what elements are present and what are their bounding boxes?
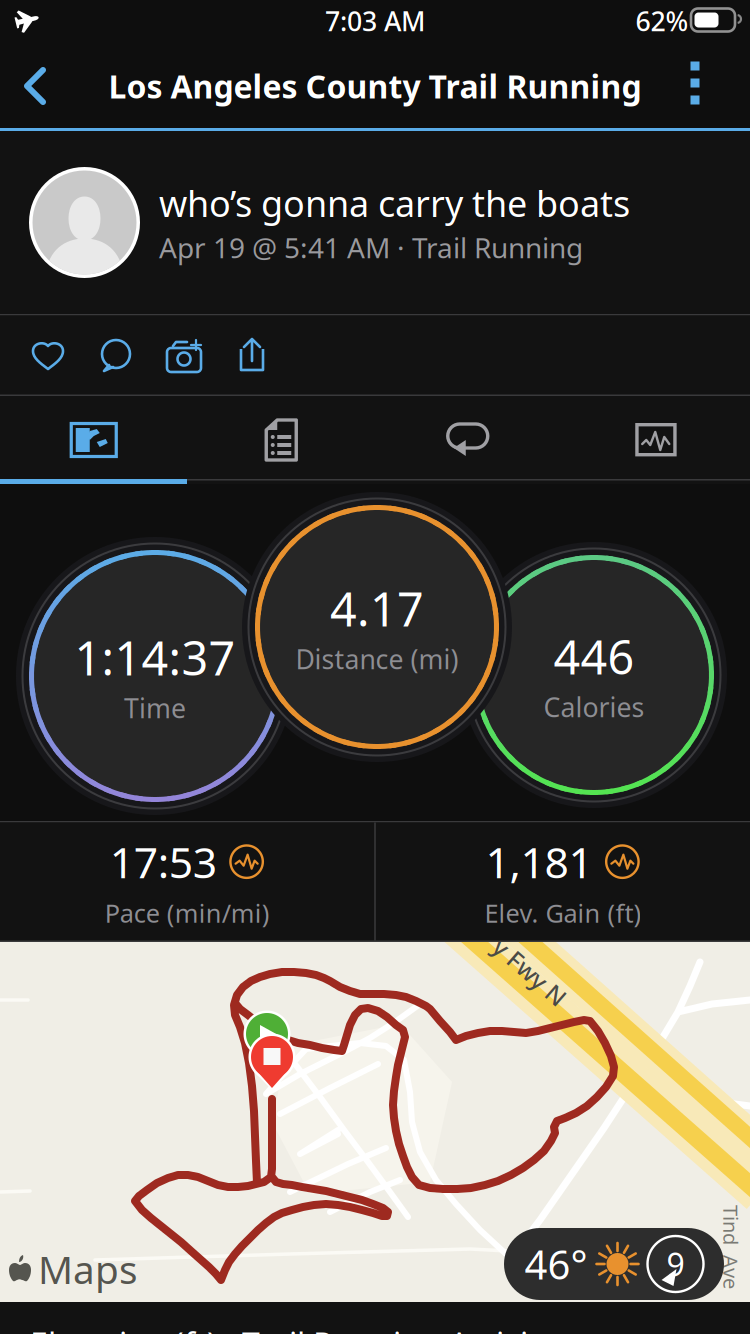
button[interactable]: Map [0,396,187,484]
button[interactable]: Details [187,396,375,484]
staticText: Los Angeles County Trail Running [108,65,641,107]
staticText: y Fwy N [485,956,574,988]
staticText: Tind Ave [689,1234,750,1260]
staticText: Pace (min/mi) [105,896,270,930]
button[interactable]: Add photo [150,330,218,380]
staticText: Apr 19 @ 5:41 AM · Trail Running [159,229,583,266]
button[interactable]: Comment [82,330,150,380]
staticText: Elev. Gain (ft) [484,896,641,930]
button[interactable]: More options [640,44,750,128]
button[interactable]: Laps [375,396,562,484]
staticText: 446 [553,625,634,687]
staticText: Elevation (ft) · Trail Running Activity [30,1323,556,1334]
staticText: 17:53 [110,833,217,890]
staticText: 1,181 [485,833,592,890]
staticText: 9 [666,1243,684,1285]
button[interactable]: Like [14,330,82,380]
staticText: Distance (mi) [295,641,458,677]
button[interactable]: Charts [562,396,750,484]
button[interactable]: Back [0,44,70,128]
staticText: 4.17 [330,577,424,639]
staticText: 62% [635,3,688,39]
staticText: who’s gonna carry the boats [159,179,630,227]
staticText: 7:03 AM [325,3,425,39]
button[interactable]: Share [218,330,286,380]
staticText: Calories [543,689,644,725]
staticText: 1:14:37 [74,626,235,688]
staticText: Maps [38,1243,138,1295]
staticText: 46° [524,1237,587,1290]
staticText: Time [124,690,186,726]
